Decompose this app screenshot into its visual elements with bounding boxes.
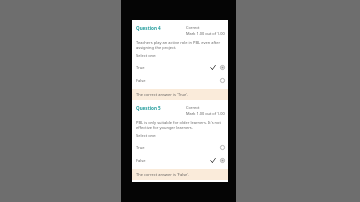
- staticText: Select one:: [136, 133, 157, 138]
- staticText: False: [136, 158, 210, 163]
- staticText: The correct answer is 'False'.: [136, 172, 190, 177]
- staticText: PBL is only suitable for older learners.…: [136, 120, 224, 131]
- other: Selected option: [220, 158, 225, 163]
- staticText: Mark 1.00 out of 1.00: [186, 111, 225, 116]
- button[interactable]: True: [132, 61, 228, 74]
- other: Option: [220, 78, 225, 83]
- staticText: Question 5: [136, 105, 186, 111]
- staticText: Teachers play an active role in PBL even…: [136, 40, 224, 51]
- staticText: True: [136, 65, 210, 70]
- staticText: Question 4: [136, 25, 186, 31]
- button[interactable]: True: [132, 141, 228, 154]
- other: Selected option: [220, 65, 225, 70]
- staticText: False: [136, 78, 220, 83]
- staticText: Correct: [186, 105, 200, 110]
- staticText: Mark 1.00 out of 1.00: [186, 31, 225, 36]
- staticText: Select one:: [136, 53, 157, 58]
- staticText: Correct: [186, 25, 200, 30]
- other: Option: [220, 145, 225, 150]
- button[interactable]: False: [132, 154, 228, 167]
- button[interactable]: False: [132, 74, 228, 87]
- staticText: The correct answer is 'True'.: [136, 92, 189, 97]
- staticText: True: [136, 145, 220, 150]
